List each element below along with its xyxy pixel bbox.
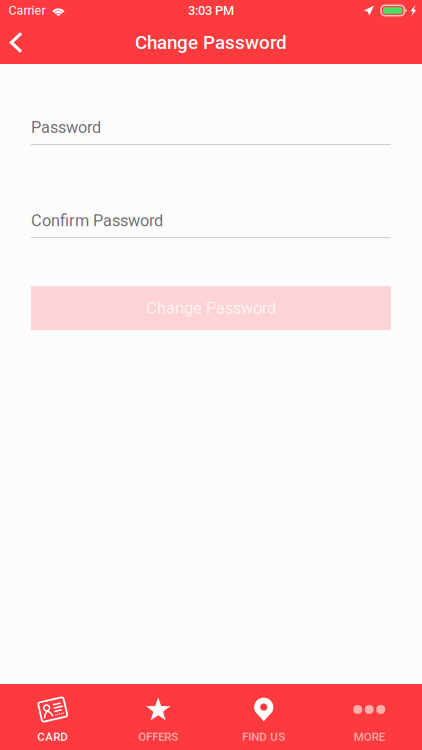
staticText: Change Password bbox=[135, 31, 287, 54]
staticText: OFFERS bbox=[138, 730, 178, 743]
button[interactable]: FIND US bbox=[211, 684, 316, 750]
button[interactable]: Change Password bbox=[31, 286, 391, 330]
staticText: MORE bbox=[354, 730, 385, 743]
staticText: Carrier bbox=[8, 3, 45, 18]
staticText: FIND US bbox=[242, 730, 285, 743]
staticText: Password bbox=[31, 118, 101, 137]
staticText: CARD bbox=[37, 730, 68, 743]
button[interactable]: MORE bbox=[316, 684, 422, 750]
staticText: Confirm Password bbox=[31, 211, 163, 230]
button[interactable]: OFFERS bbox=[105, 684, 211, 750]
staticText: Change Password bbox=[146, 299, 276, 318]
button[interactable]: CARD bbox=[0, 684, 105, 750]
button[interactable]: Back bbox=[0, 22, 40, 63]
staticText: 3:03 PM bbox=[188, 3, 234, 18]
